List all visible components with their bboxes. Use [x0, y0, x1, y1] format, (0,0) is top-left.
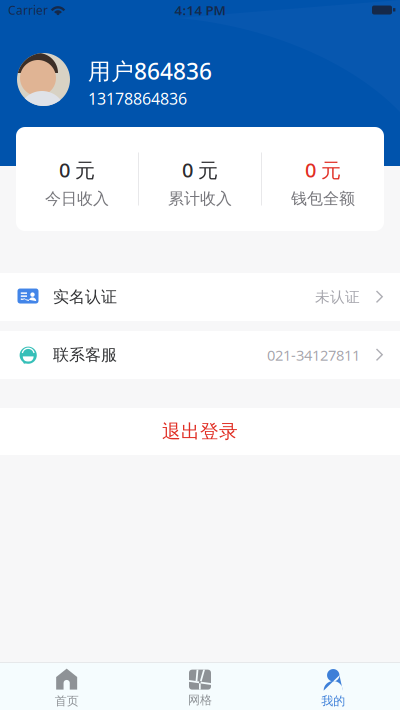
staticText: 实名认证 [53, 287, 117, 307]
staticText: 联系客服 [53, 345, 117, 365]
staticText: 网格 [188, 693, 212, 707]
staticText: 钱包全额 [291, 189, 355, 209]
staticText: Carrier [8, 2, 48, 18]
staticText: 13178864836 [88, 88, 187, 109]
staticText: 0 元 [59, 156, 95, 183]
staticText: 未认证 [315, 288, 360, 306]
staticText: 0 元 [305, 156, 341, 183]
button[interactable]: 网格 [133, 662, 267, 710]
staticText: 我的 [321, 694, 345, 708]
staticText: 退出登录 [162, 420, 238, 443]
staticText: 4:14 PM [174, 1, 225, 19]
staticText: 用户864836 [88, 56, 212, 86]
button[interactable]: 退出登录 [0, 408, 400, 455]
button[interactable]: 我的 [267, 662, 400, 710]
button[interactable]: 实名认证 [0, 273, 400, 321]
staticText: 累计收入 [168, 189, 232, 209]
button[interactable]: 首页 [0, 662, 133, 710]
button[interactable]: 联系客服 [0, 331, 400, 379]
staticText: 021-34127811 [267, 345, 360, 365]
staticText: 今日收入 [45, 189, 109, 209]
staticText: 首页 [55, 694, 79, 708]
staticText: 0 元 [182, 156, 218, 183]
